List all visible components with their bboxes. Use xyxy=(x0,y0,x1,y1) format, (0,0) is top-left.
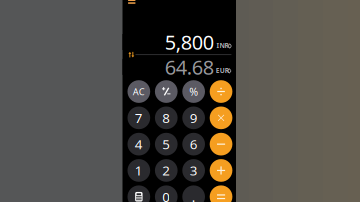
button[interactable]: Calculator mode xyxy=(127,185,150,202)
button[interactable]: 2 xyxy=(155,159,178,182)
staticText: 4 xyxy=(135,135,143,153)
staticText: 3 xyxy=(190,162,198,179)
button[interactable]: Swap currencies xyxy=(122,52,128,57)
staticText: 9 xyxy=(190,109,198,127)
button[interactable]: Minus xyxy=(210,133,232,155)
staticText: 0 xyxy=(162,188,170,202)
staticText: 7 xyxy=(135,109,143,127)
button[interactable]: AC xyxy=(127,80,150,103)
button[interactable]: 5,800 xyxy=(122,34,236,50)
staticText: 5,800 xyxy=(165,29,214,55)
button[interactable]: 5 xyxy=(155,133,178,155)
staticText: 2 xyxy=(162,162,170,179)
staticText: 1 xyxy=(135,162,143,179)
button[interactable]: % xyxy=(182,80,205,103)
button[interactable]: 6 xyxy=(182,133,205,155)
staticText: . xyxy=(192,188,196,202)
button[interactable]: 4 xyxy=(127,133,150,155)
button[interactable]: 3 xyxy=(182,159,205,182)
button[interactable]: 7 xyxy=(127,106,150,129)
button[interactable]: Toggle sign xyxy=(155,80,178,103)
button[interactable]: Equals xyxy=(210,185,232,202)
staticText: AC xyxy=(133,85,145,98)
staticText: EUR xyxy=(216,66,229,75)
staticText: 6 xyxy=(190,135,198,153)
button[interactable]: 8 xyxy=(155,106,178,129)
button[interactable]: Plus xyxy=(210,159,232,182)
button[interactable]: Divide xyxy=(210,80,232,103)
button[interactable]: Multiply xyxy=(210,106,232,129)
staticText: % xyxy=(189,84,198,99)
staticText: INR xyxy=(217,41,229,50)
button[interactable]: 9 xyxy=(182,106,205,129)
button[interactable]: 64.68 xyxy=(122,59,236,75)
button[interactable]: 0 xyxy=(155,185,178,202)
button[interactable]: 1 xyxy=(127,159,150,182)
staticText: 8 xyxy=(162,109,170,127)
staticText: 64.68 xyxy=(165,54,214,80)
button[interactable]: Menu xyxy=(128,0,135,4)
button[interactable]: . xyxy=(182,185,205,202)
staticText: 5 xyxy=(162,135,170,153)
